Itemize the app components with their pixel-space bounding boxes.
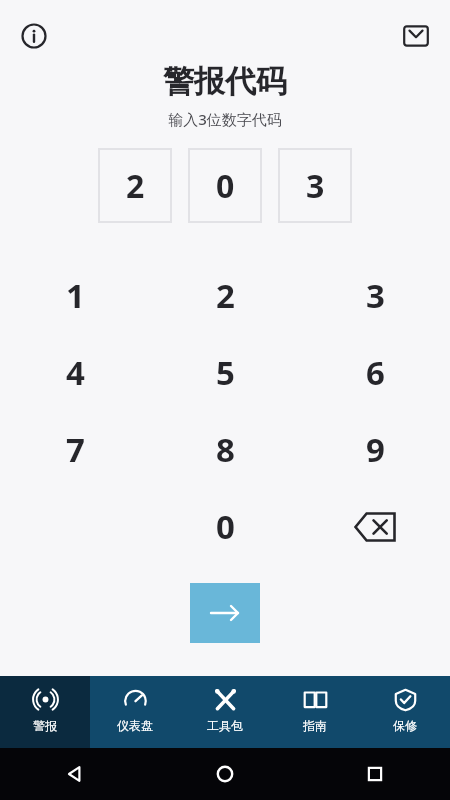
button[interactable]: 警报 xyxy=(0,676,90,748)
button[interactable]: 6 xyxy=(300,334,450,411)
button[interactable]: Backspace xyxy=(300,488,450,565)
staticText: 2 xyxy=(126,164,145,208)
button[interactable]: 0 xyxy=(188,148,262,223)
staticText: 3 xyxy=(366,273,385,318)
staticText: 输入3位数字代码 xyxy=(168,109,282,129)
button[interactable]: 2 xyxy=(150,257,300,334)
staticText: 5 xyxy=(216,350,235,395)
button[interactable]: Recent apps xyxy=(300,748,450,800)
button[interactable]: 8 xyxy=(150,411,300,488)
staticText: 仪表盘 xyxy=(117,718,153,733)
staticText: 3 xyxy=(306,164,325,208)
button[interactable]: 7 xyxy=(0,411,150,488)
staticText: 0 xyxy=(216,164,235,208)
staticText: 0 xyxy=(216,504,235,549)
staticText: 保修 xyxy=(393,718,417,733)
staticText: 6 xyxy=(366,350,385,395)
button[interactable]: 5 xyxy=(150,334,300,411)
button[interactable]: 指南 xyxy=(270,676,360,748)
staticText: 9 xyxy=(366,427,385,472)
staticText: 7 xyxy=(66,427,85,472)
button[interactable]: Submit xyxy=(190,583,260,643)
button[interactable]: Back xyxy=(0,748,150,800)
button[interactable]: 仪表盘 xyxy=(90,676,180,748)
staticText: 警报代码 xyxy=(163,62,287,101)
button[interactable]: 3 xyxy=(278,148,352,223)
button[interactable]: 工具包 xyxy=(180,676,270,748)
button[interactable]: 保修 xyxy=(360,676,450,748)
staticText: 4 xyxy=(66,350,85,395)
button[interactable]: Home xyxy=(150,748,300,800)
staticText: 2 xyxy=(216,273,235,318)
button[interactable]: 2 xyxy=(98,148,172,223)
button[interactable]: 3 xyxy=(300,257,450,334)
staticText: 8 xyxy=(216,427,235,472)
staticText: 指南 xyxy=(303,718,327,733)
button[interactable]: Messages xyxy=(396,16,436,56)
button[interactable]: 1 xyxy=(0,257,150,334)
button[interactable]: Information xyxy=(14,16,54,56)
button[interactable]: 9 xyxy=(300,411,450,488)
staticText: 警报 xyxy=(33,718,57,733)
staticText: 1 xyxy=(66,273,85,318)
staticText: 工具包 xyxy=(207,718,243,733)
button[interactable]: 4 xyxy=(0,334,150,411)
button[interactable]: 0 xyxy=(150,488,300,565)
